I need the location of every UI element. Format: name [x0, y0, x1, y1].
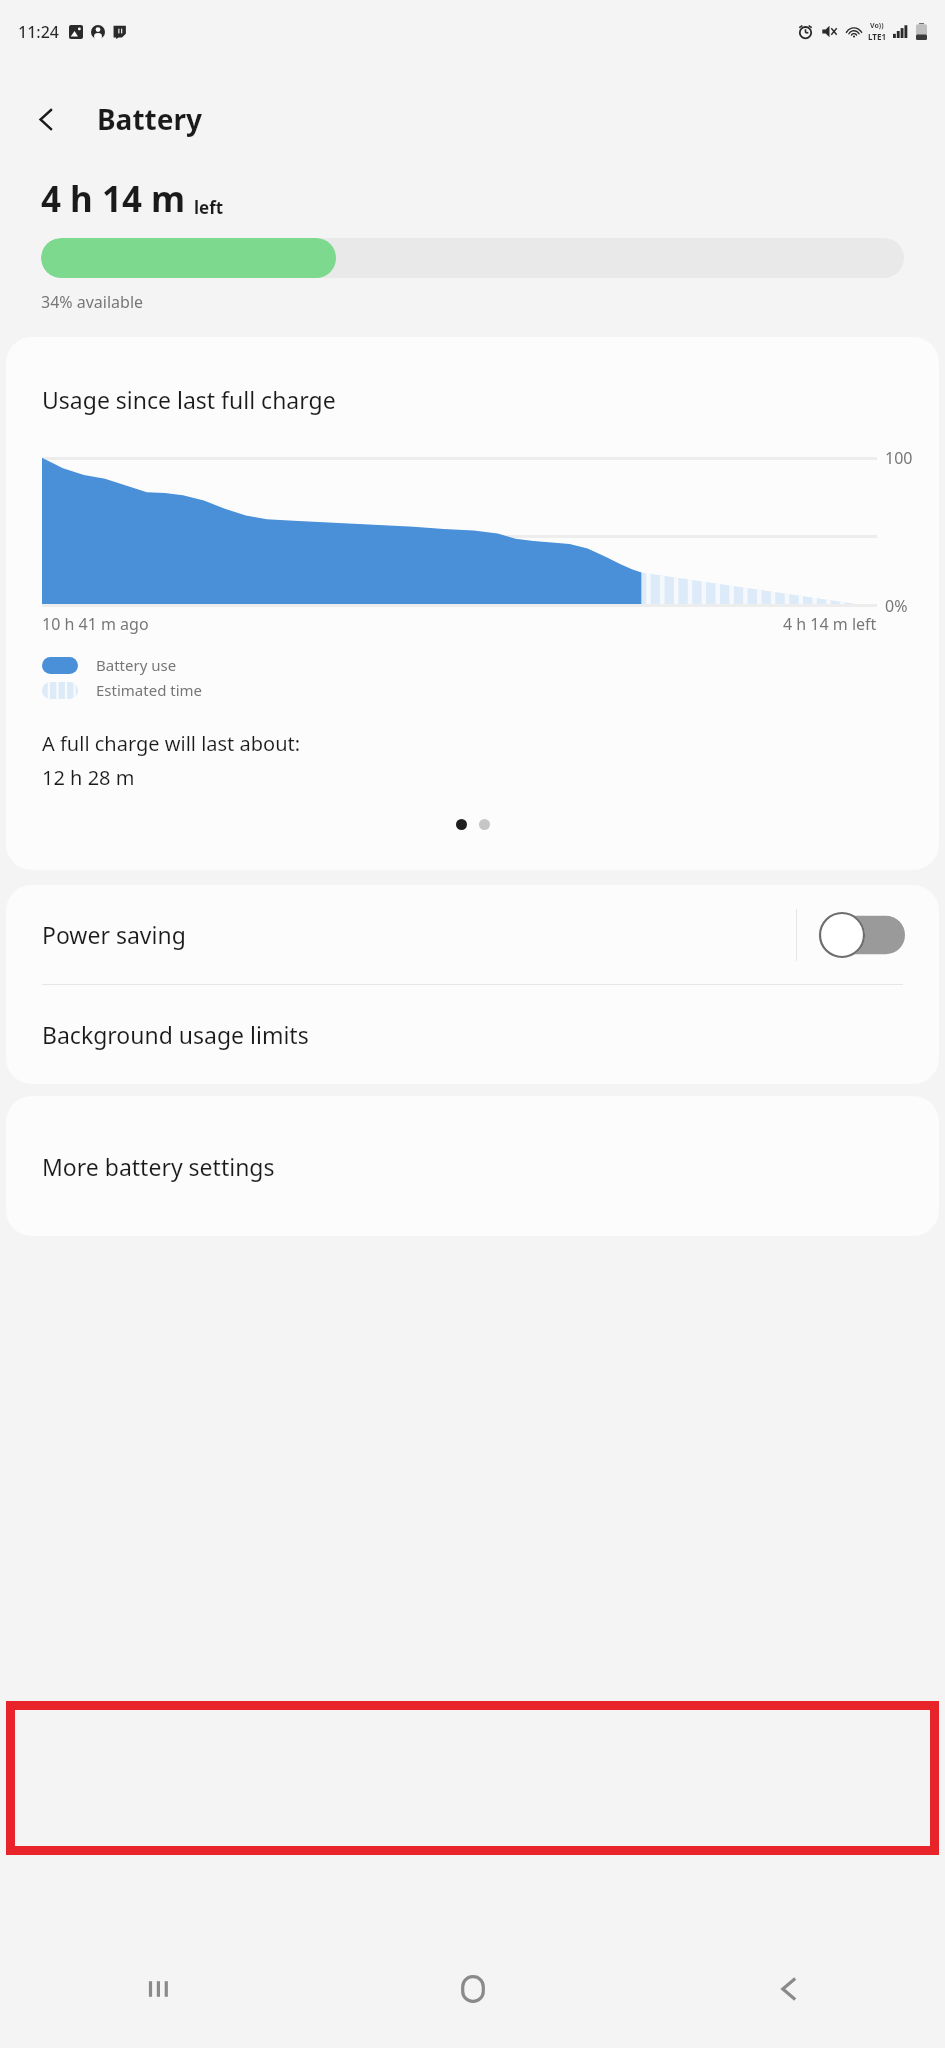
- staticText: Background usage limits: [42, 1019, 309, 1050]
- button[interactable]: Home: [315, 1930, 630, 2048]
- button[interactable]: Power saving: [6, 885, 939, 984]
- staticText: Usage since last full charge: [42, 384, 336, 415]
- staticText: 10 h 41 m ago: [42, 613, 149, 635]
- staticText: A full charge will last about:: [42, 730, 301, 757]
- button[interactable]: More battery settings: [6, 1096, 939, 1236]
- staticText: Power saving: [42, 919, 796, 950]
- staticText: 11:24: [18, 21, 59, 43]
- button[interactable]: Back: [630, 1930, 945, 2048]
- staticText: Estimated time: [96, 680, 203, 700]
- button[interactable]: Background usage limits: [6, 985, 939, 1084]
- staticText: Vo)): [870, 21, 884, 31]
- staticText: More battery settings: [42, 1151, 275, 1182]
- staticText: 4 h 14 m: [41, 175, 186, 223]
- staticText: 100: [885, 447, 913, 469]
- staticText: Battery: [97, 100, 202, 138]
- staticText: 34% available: [41, 291, 144, 313]
- staticText: LTE1: [868, 31, 886, 42]
- staticText: Battery use: [96, 655, 177, 675]
- button[interactable]: Usage since last full charge: [6, 337, 939, 870]
- button[interactable]: Navigate up: [22, 95, 70, 143]
- staticText: 4 h 14 m left: [783, 613, 877, 635]
- staticText: 0%: [885, 595, 908, 617]
- staticText: 12 h 28 m: [42, 764, 135, 791]
- button[interactable]: Power saving: [819, 912, 905, 958]
- staticText: left: [194, 196, 224, 219]
- button[interactable]: Recent apps: [0, 1930, 315, 2048]
